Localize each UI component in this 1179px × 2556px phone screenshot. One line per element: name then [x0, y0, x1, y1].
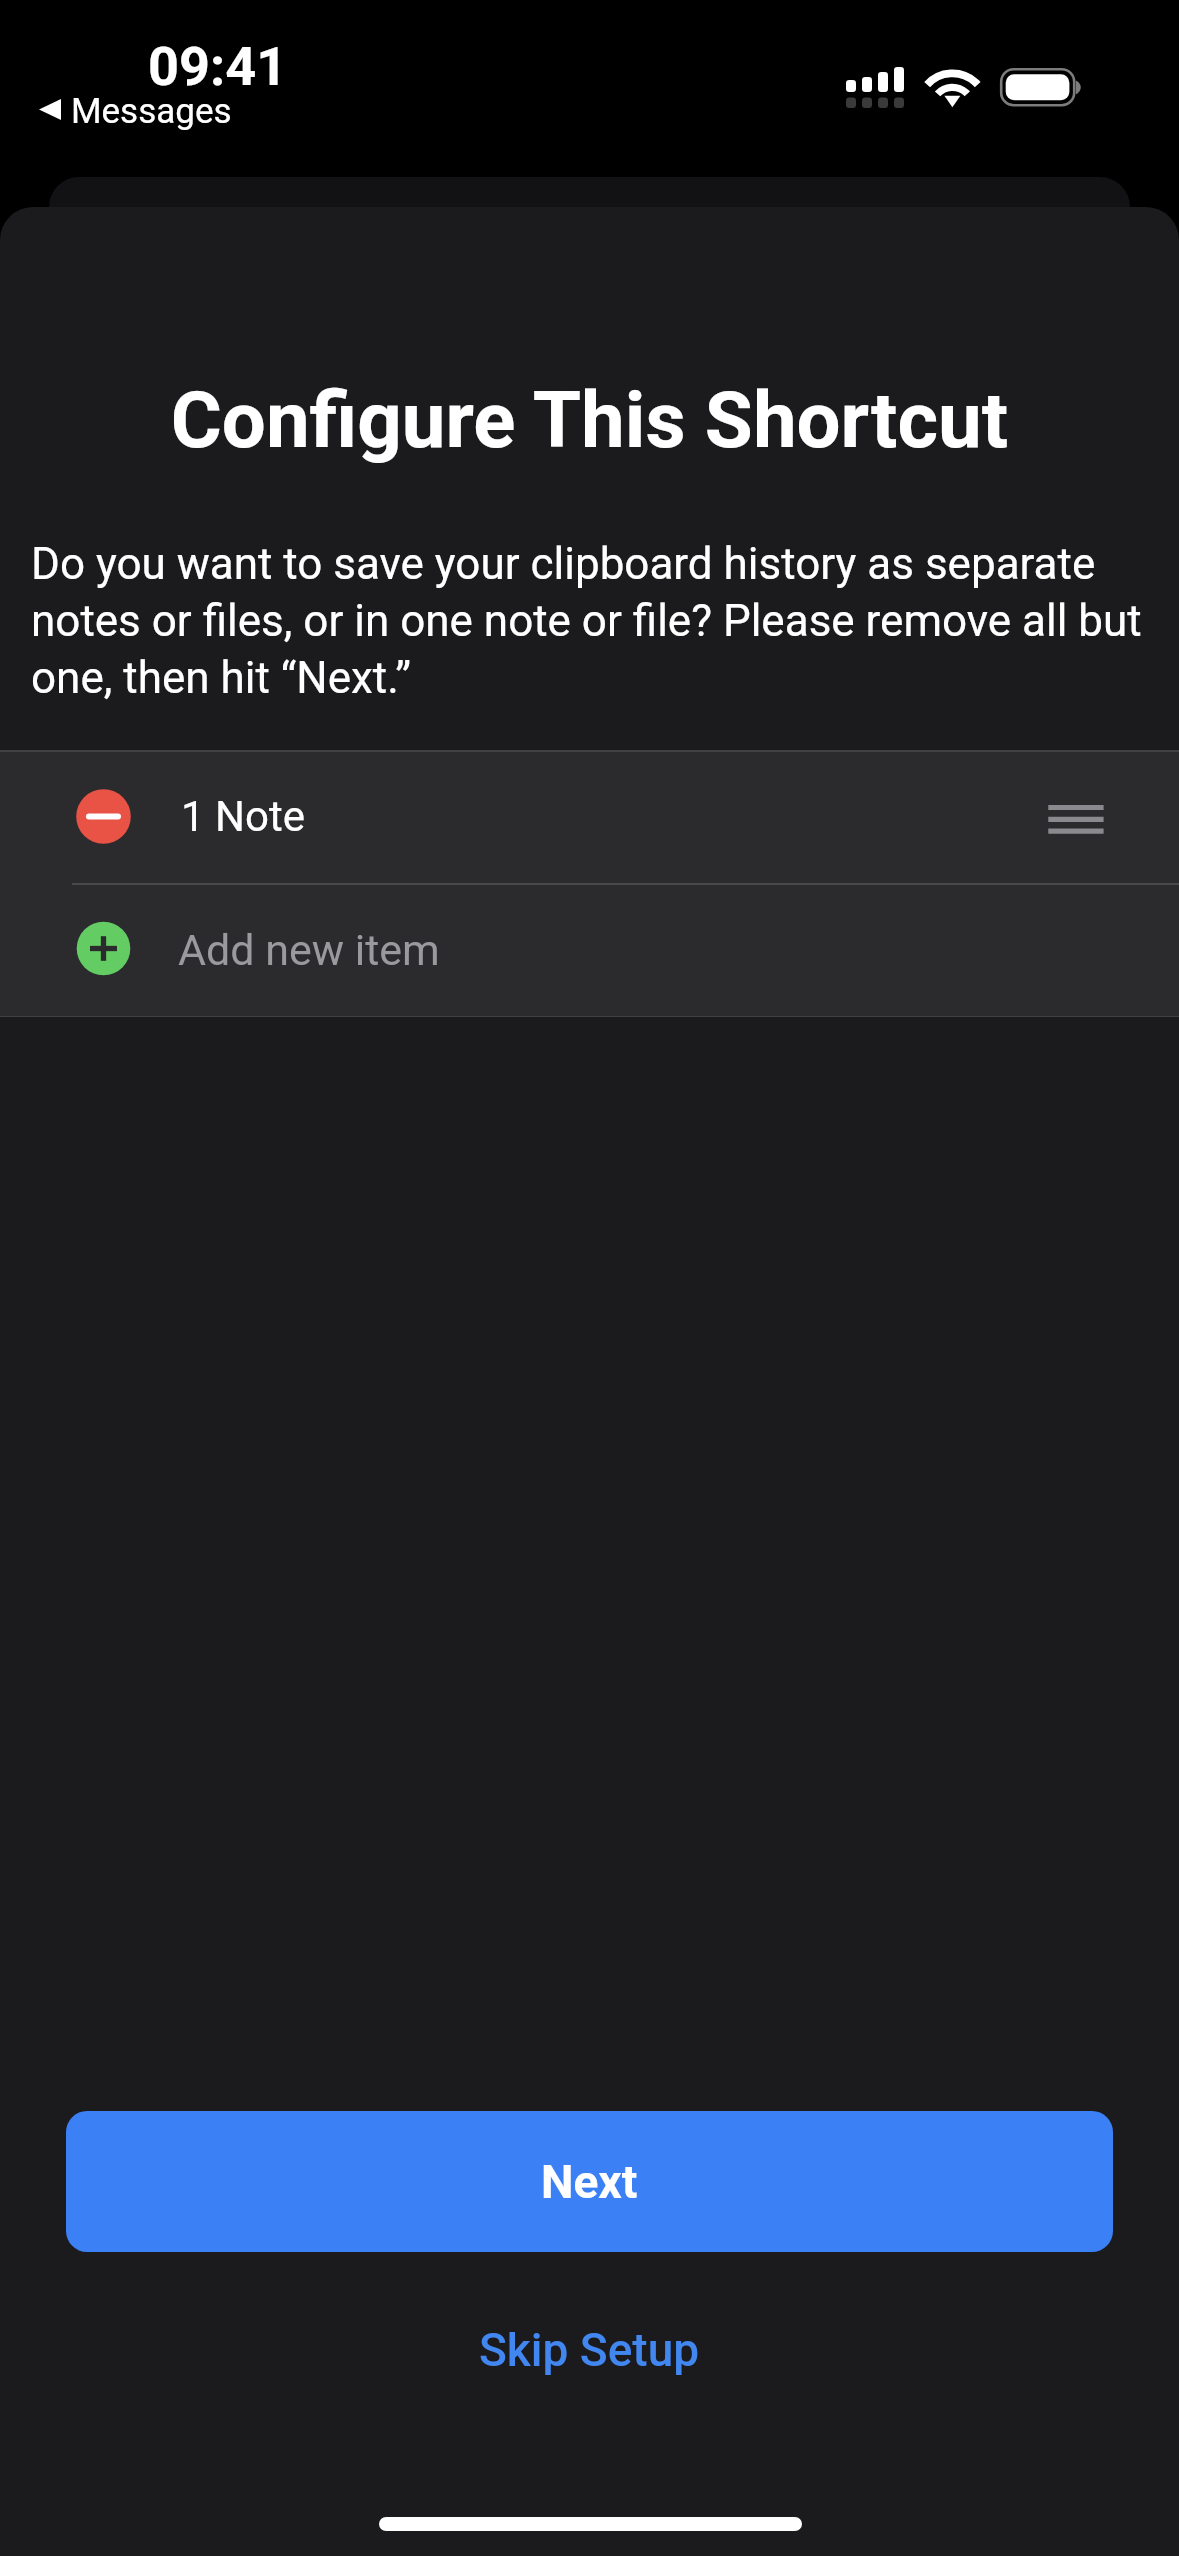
button[interactable]: Add new item	[0, 885, 1179, 1016]
button[interactable]: Skip Setup	[400, 2304, 779, 2396]
staticText: Configure This Shortcut	[0, 375, 1179, 466]
staticText: Skip Setup	[479, 2323, 700, 2377]
staticText: 1 Note	[181, 792, 305, 841]
button[interactable]: Next	[66, 2111, 1113, 2252]
staticText: Do you want to save your clipboard histo…	[31, 538, 1146, 704]
staticText: 09:41	[148, 35, 288, 98]
staticText: Messages	[71, 91, 232, 132]
staticText: Add new item	[178, 925, 440, 975]
button[interactable]: Messages	[28, 86, 243, 130]
staticText: Next	[541, 2155, 638, 2209]
button[interactable]: 1 Note	[0, 752, 1179, 883]
other: Reorder	[1045, 798, 1107, 838]
